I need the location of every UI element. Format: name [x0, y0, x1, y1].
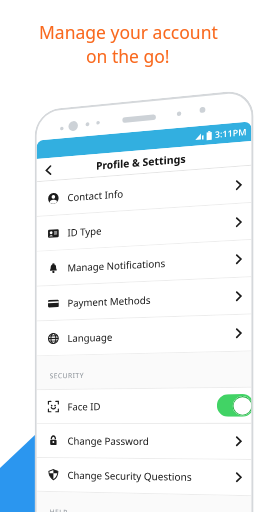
- staticText: HELP: [50, 507, 68, 512]
- staticText: Payment Methods: [67, 293, 151, 310]
- staticText: on the go!: [86, 44, 170, 68]
- staticText: Change Password: [67, 434, 149, 448]
- staticText: ID Type: [67, 224, 102, 239]
- staticText: Manage your account: [39, 20, 218, 44]
- staticText: Manage Notifications: [67, 256, 166, 275]
- staticText: Change Security Questions: [67, 468, 192, 484]
- button[interactable]: Manage Notifications: [37, 240, 251, 286]
- staticText: 3:11PM: [215, 126, 247, 141]
- button[interactable]: Contact Info: [37, 166, 251, 216]
- staticText: Profile & Settings: [96, 151, 186, 173]
- staticText: Language: [67, 330, 113, 345]
- button[interactable]: Face ID: [37, 388, 251, 423]
- button[interactable]: Language: [37, 314, 251, 355]
- button[interactable]: ID Type: [37, 203, 251, 251]
- staticText: SECURITY: [50, 370, 85, 380]
- button[interactable]: Change Security Questions: [37, 458, 251, 495]
- button[interactable]: [37, 157, 59, 182]
- button[interactable]: Payment Methods: [37, 277, 251, 321]
- button[interactable]: [217, 394, 251, 417]
- staticText: Face ID: [67, 399, 101, 413]
- staticText: Contact Info: [67, 186, 123, 204]
- button[interactable]: Change Password: [37, 424, 251, 459]
